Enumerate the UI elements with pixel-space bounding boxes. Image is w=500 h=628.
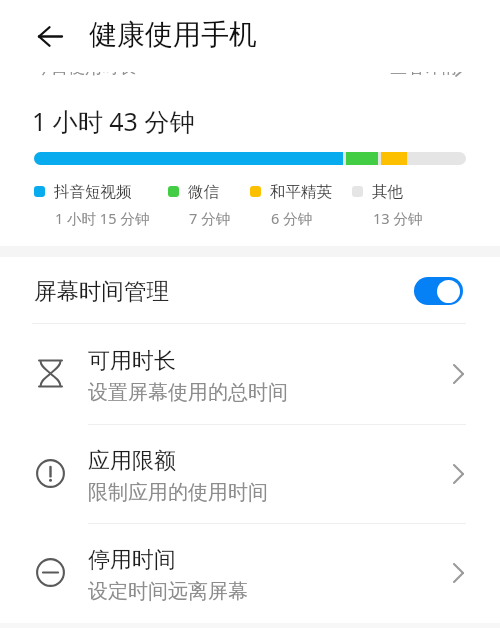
button[interactable]: Back (26, 18, 74, 54)
staticText: 微信 (188, 182, 219, 202)
button[interactable]: 可用时长 (0, 323, 500, 424)
staticText: 6 分钟 (271, 208, 313, 228)
staticText: 查看详情 (390, 57, 458, 78)
staticText: 和平精英 (270, 182, 332, 202)
staticText: 停用时间 (88, 546, 176, 574)
staticText: 健康使用手机 (89, 17, 257, 52)
staticText: 设置屏幕使用的总时间 (88, 380, 288, 405)
staticText: 7 分钟 (189, 208, 231, 228)
staticText: 设定时间远离屏幕 (88, 579, 248, 604)
staticText: 1 小时 43 分钟 (32, 104, 195, 138)
staticText: 其他 (372, 182, 403, 202)
staticText: 今日使用时长 (34, 57, 136, 78)
button[interactable]: 停用时间 (0, 523, 500, 622)
button[interactable]: 应用限额 (0, 424, 500, 523)
staticText: 应用限额 (88, 447, 176, 475)
staticText: 1 小时 15 分钟 (55, 208, 150, 228)
button[interactable]: 屏幕时间管理 (0, 259, 500, 323)
staticText: 屏幕时间管理 (34, 277, 169, 305)
staticText: 可用时长 (88, 347, 176, 375)
staticText: 限制应用的使用时间 (88, 480, 268, 505)
staticText: 13 分钟 (373, 208, 423, 228)
staticText: 抖音短视频 (54, 182, 132, 202)
